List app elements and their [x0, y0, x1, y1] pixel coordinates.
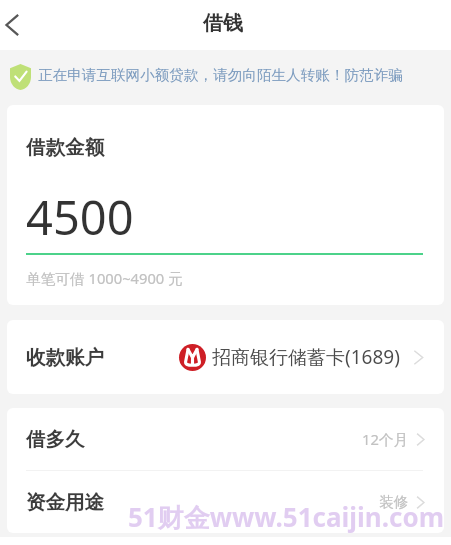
staticText: 收款账户	[26, 345, 104, 370]
staticText: 4500	[26, 185, 134, 249]
button[interactable]: Back	[0, 2, 46, 48]
staticText: 51财金www.51caijin.com	[128, 499, 445, 535]
staticText: 装修	[379, 493, 409, 512]
button[interactable]: 收款账户	[7, 320, 444, 394]
staticText: 借多久	[26, 427, 85, 452]
staticText: 单笔可借 1000~4900 元	[26, 268, 183, 288]
staticText: 借钱	[203, 11, 243, 36]
staticText: 12个月	[362, 429, 409, 449]
button[interactable]: 资金用途	[7, 471, 444, 533]
staticText: 借款金额	[26, 135, 104, 160]
staticText: 资金用途	[26, 490, 104, 515]
button[interactable]: 借多久	[7, 408, 444, 470]
staticText: 招商银行储蓄卡(1689)	[212, 344, 400, 370]
staticText: 正在申请互联网小额贷款，请勿向陌生人转账！防范诈骗	[38, 66, 403, 84]
